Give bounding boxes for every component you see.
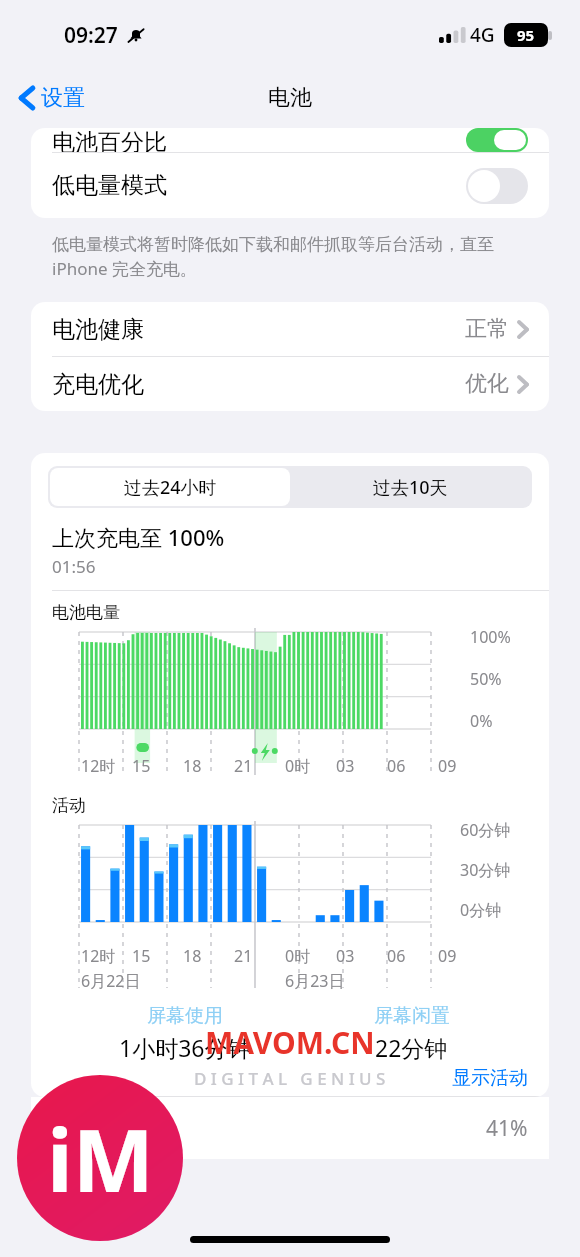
staticText: 03 — [336, 755, 355, 777]
staticText: 低电量模式 — [52, 171, 167, 200]
staticText: 03 — [336, 945, 355, 967]
staticText: 优化 — [465, 370, 509, 398]
staticText: 06 — [387, 755, 406, 777]
staticText: 60分钟 — [460, 819, 511, 841]
button[interactable] — [466, 128, 528, 152]
staticText: 6月23日 — [285, 970, 345, 992]
staticText: 100% — [470, 626, 511, 648]
staticText: 1小时36分钟 — [119, 1032, 251, 1063]
staticText: 充电优化 — [52, 370, 144, 399]
staticText: 电池百分比 — [52, 128, 167, 152]
button[interactable]: 电池百分比 — [31, 128, 549, 152]
staticText: 95 — [517, 25, 535, 45]
staticText: 18 — [183, 755, 202, 777]
staticText: 30分钟 — [460, 859, 511, 881]
staticText: 屏幕闲置 — [374, 1004, 450, 1028]
staticText: 过去10天 — [373, 475, 448, 500]
staticText: 15 — [132, 945, 151, 967]
staticText: 显示活动 — [452, 1066, 528, 1090]
staticText: 电池 — [268, 84, 312, 112]
staticText: 电池电量 — [52, 602, 120, 623]
staticText: 活动 — [52, 795, 86, 816]
staticText: 09:27 — [64, 21, 118, 50]
button[interactable]: 过去24小时 — [50, 468, 290, 506]
staticText: 过去24小时 — [124, 475, 217, 500]
staticText: 12时 — [81, 755, 116, 777]
staticText: 6月22日 — [81, 970, 141, 992]
button[interactable] — [466, 168, 528, 204]
staticText: 0时 — [285, 755, 311, 777]
button[interactable]: 快手 — [31, 1097, 549, 1159]
staticText: 屏幕使用 — [147, 1004, 223, 1028]
staticText: 15 — [132, 755, 151, 777]
staticText: 09 — [438, 945, 457, 967]
button[interactable]: 显示活动 — [452, 1066, 528, 1090]
button[interactable]: 过去10天 — [290, 468, 530, 506]
staticText: 21 — [234, 945, 253, 967]
staticText: 正常 — [465, 315, 509, 343]
staticText: 09 — [438, 755, 457, 777]
staticText: 快手 — [102, 1114, 146, 1142]
button[interactable]: 电池健康 — [31, 302, 549, 356]
staticText: 06 — [387, 945, 406, 967]
staticText: 12时 — [81, 945, 116, 967]
staticText: 上次充电至 100% — [52, 522, 225, 552]
staticText: 41% — [486, 1114, 528, 1143]
staticText: 01:56 — [52, 555, 96, 578]
staticText: 18 — [183, 945, 202, 967]
staticText: 21 — [234, 755, 253, 777]
staticText: 电池健康 — [52, 315, 144, 344]
staticText: 低电量模式将暂时降低如下载和邮件抓取等后台活动，直至 iPhone 完全充电。 — [52, 232, 536, 280]
button[interactable]: 设置 — [14, 80, 91, 116]
staticText: 0分钟 — [460, 899, 502, 921]
staticText: 50% — [470, 668, 502, 690]
staticText: 设置 — [41, 84, 85, 112]
staticText: 4G — [470, 22, 495, 48]
staticText: 0时 — [285, 945, 311, 967]
staticText: iM — [47, 1100, 154, 1217]
staticText: 22分钟 — [375, 1032, 448, 1063]
button[interactable]: 低电量模式 — [31, 153, 549, 218]
staticText: 0% — [470, 710, 493, 732]
staticText: D I G I T A L G E N I U S — [194, 1067, 386, 1090]
staticText: MAVOM.CN — [205, 1022, 375, 1063]
button[interactable]: 充电优化 — [31, 357, 549, 411]
